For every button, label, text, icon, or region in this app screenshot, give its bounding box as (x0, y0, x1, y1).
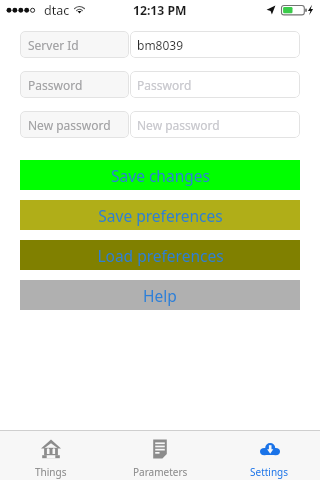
other: Settings (260, 439, 280, 459)
other: Parameters (150, 439, 170, 459)
button[interactable]: Save preferences (20, 200, 300, 230)
staticText: Save changes (111, 165, 210, 186)
staticText: Settings (250, 465, 289, 479)
button[interactable]: Password (20, 71, 129, 98)
other: Things (41, 439, 61, 459)
staticText: New password (137, 117, 220, 133)
staticText: Password (28, 77, 83, 93)
staticText: Help (143, 285, 177, 306)
staticText: bm8039 (137, 37, 184, 53)
button[interactable]: Load preferences (20, 240, 300, 270)
button[interactable]: New password (20, 111, 129, 138)
button[interactable]: bm8039 (130, 31, 300, 58)
staticText: Server Id (28, 37, 79, 53)
staticText: Save preferences (98, 205, 223, 226)
staticText: New password (28, 117, 111, 133)
button[interactable]: New password (130, 111, 300, 138)
button[interactable]: Password (130, 71, 300, 98)
button[interactable]: Things (0, 431, 101, 480)
button[interactable]: Save changes (20, 160, 300, 190)
button[interactable]: Server Id (20, 31, 129, 58)
staticText: dtac (44, 2, 70, 19)
button[interactable]: Parameters (101, 431, 219, 480)
staticText: Load preferences (97, 245, 224, 266)
staticText: Password (137, 77, 192, 93)
staticText: 12:13 PM (133, 2, 187, 19)
button[interactable]: Help (20, 280, 300, 310)
staticText: Things (35, 465, 67, 479)
staticText: Parameters (133, 465, 188, 479)
button[interactable]: Settings (219, 431, 320, 480)
